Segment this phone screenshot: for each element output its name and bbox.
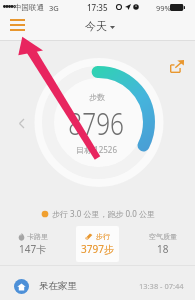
button[interactable]: 空气质量 (141, 226, 184, 262)
staticText: 99% (156, 3, 171, 13)
staticText: 147卡 (19, 242, 47, 256)
staticText: 3797步 (81, 242, 114, 256)
staticText: 18 (157, 242, 169, 256)
staticText: 步数 (89, 92, 105, 102)
staticText: 呆在家里 (39, 280, 77, 292)
staticText: 今天 (85, 19, 107, 33)
staticText: 目标 12526 (76, 144, 117, 155)
staticText: 步行 (96, 232, 110, 241)
staticText: 13:38 - 07:44 (139, 281, 184, 291)
button[interactable]: Menu (5, 14, 30, 36)
button[interactable]: Share (168, 57, 186, 75)
button[interactable]: 步行 (76, 226, 119, 262)
staticText: 3G (49, 3, 59, 13)
button[interactable]: 今天 (85, 19, 115, 33)
button[interactable]: Previous day (13, 115, 29, 131)
staticText: 8796 (68, 101, 125, 143)
staticText: 卡路里 (27, 232, 48, 241)
button[interactable]: 呆在家里 (0, 269, 195, 300)
staticText: 中国联通 (14, 3, 44, 12)
button[interactable]: 卡路里 (11, 226, 54, 262)
staticText: 步行 3.0 公里，跑步 0.0 公里 (52, 208, 155, 219)
staticText: 17:35 (87, 2, 108, 13)
staticText: 空气质量 (149, 232, 177, 241)
